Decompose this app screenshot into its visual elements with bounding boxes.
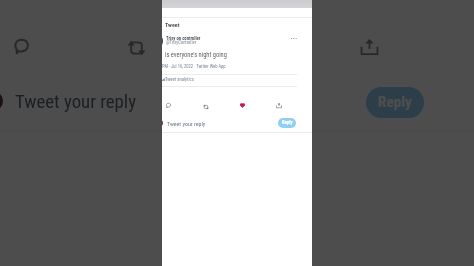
button[interactable]: Tweet your reply bbox=[0, 84, 357, 128]
button[interactable]: Like bbox=[237, 100, 248, 111]
staticText: Tweet your reply bbox=[15, 91, 137, 113]
button[interactable]: Tweet your reply bbox=[162, 118, 275, 132]
button[interactable]: Share bbox=[352, 29, 387, 64]
button[interactable]: More options bbox=[289, 33, 299, 43]
button[interactable]: Retweet bbox=[119, 30, 154, 65]
staticText: Reply bbox=[378, 93, 412, 111]
button[interactable]: Reply bbox=[163, 100, 174, 111]
button[interactable]: Reply bbox=[278, 118, 296, 128]
staticText: Reply bbox=[282, 120, 293, 126]
button[interactable]: Tweet analytics bbox=[162, 74, 297, 86]
button[interactable]: Retweet bbox=[200, 101, 211, 112]
button[interactable]: Reply bbox=[4, 29, 39, 64]
staticText: Tweet your reply bbox=[167, 120, 206, 127]
staticText: Tweet bbox=[165, 21, 180, 28]
button[interactable]: Share bbox=[273, 100, 284, 111]
button[interactable]: Tweet bbox=[162, 18, 312, 31]
staticText: PM · Jul 16, 2022 · Twitter Web App bbox=[162, 64, 226, 69]
staticText: @TrisyController bbox=[166, 40, 197, 45]
staticText: is everyone's night going bbox=[165, 51, 227, 59]
button[interactable]: Reply bbox=[366, 87, 424, 118]
staticText: Tweet analytics bbox=[165, 77, 194, 83]
staticText: Trisy on controller bbox=[166, 36, 201, 42]
